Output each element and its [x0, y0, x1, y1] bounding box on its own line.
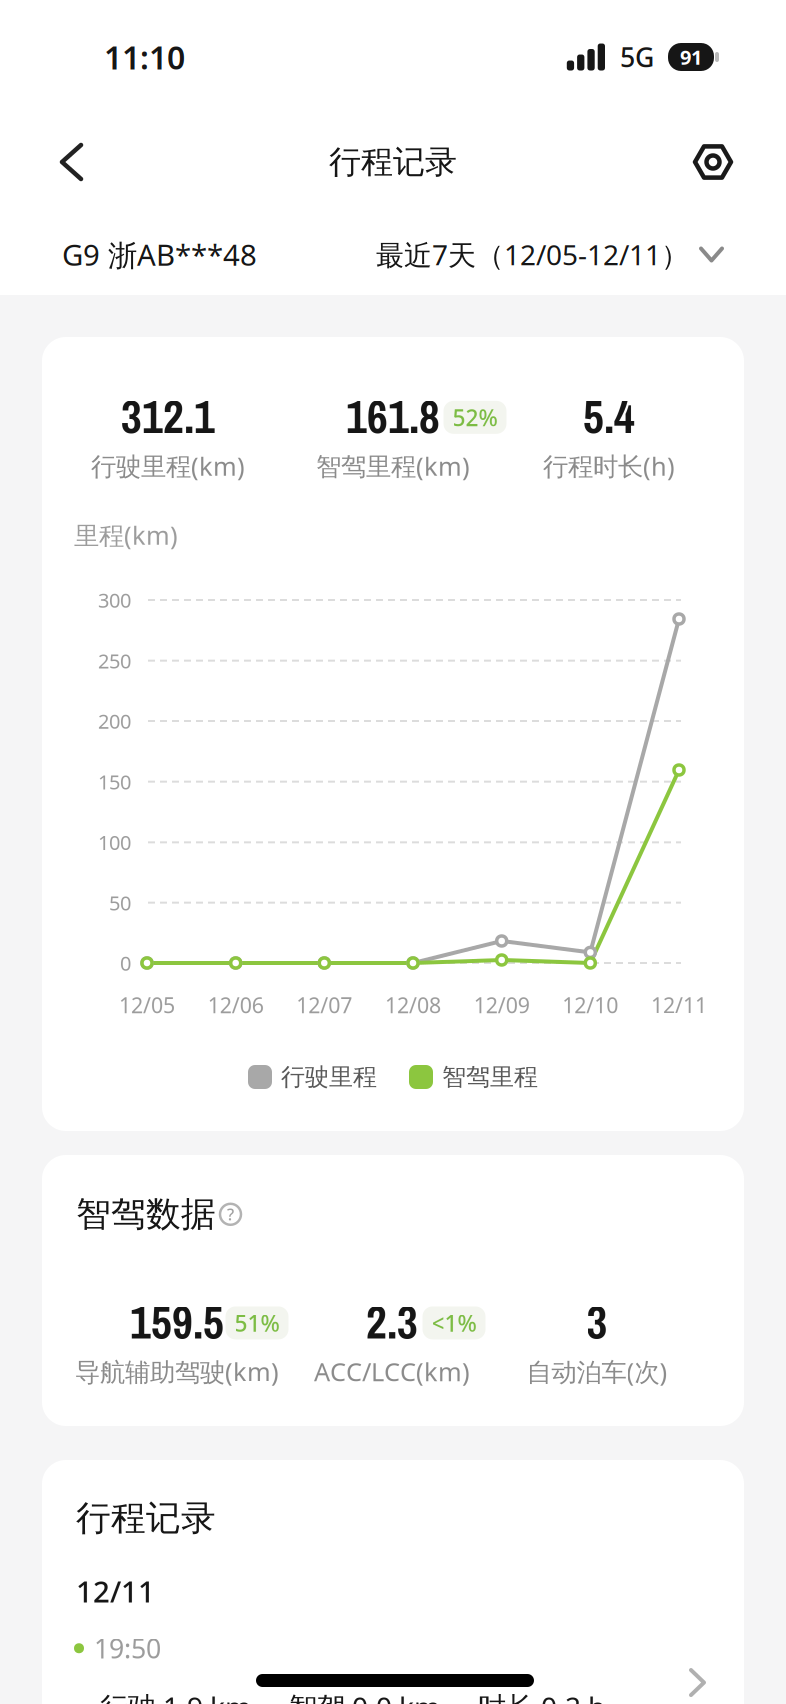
- staticText: 12/07: [296, 991, 352, 1019]
- staticText: 12/05: [119, 991, 175, 1019]
- staticText: 智驾 0.0 km: [289, 1688, 440, 1704]
- staticText: 12/08: [385, 991, 441, 1019]
- staticText: <1%: [431, 1308, 476, 1338]
- staticText: 150: [98, 768, 131, 795]
- staticText: 91: [680, 44, 702, 70]
- staticText: 52%: [452, 402, 497, 432]
- staticText: 自动泊车(次): [526, 1355, 667, 1388]
- staticText: 50: [109, 889, 131, 916]
- staticText: ACC/LCC(km): [314, 1355, 470, 1388]
- staticText: 行程记录: [329, 142, 457, 182]
- staticText: 19:50: [94, 1630, 161, 1666]
- staticText: 智驾数据: [76, 1193, 216, 1236]
- staticText: 12/06: [208, 991, 264, 1019]
- button[interactable]: Back: [0, 125, 81, 199]
- staticText: 行驶里程: [281, 1062, 377, 1092]
- staticText: 2.3: [366, 1292, 418, 1353]
- staticText: 最近7天（12/05-12/11）: [376, 236, 689, 273]
- button[interactable]: 行驶 1.9 km: [42, 1666, 744, 1704]
- button[interactable]: 最近7天（12/05-12/11）: [376, 236, 722, 273]
- staticText: 11:10: [104, 36, 185, 78]
- button[interactable]: Settings: [695, 130, 786, 194]
- button[interactable]: 智驾数据说明: [220, 1204, 241, 1225]
- staticText: 3: [586, 1292, 607, 1353]
- staticText: 312.1: [121, 386, 215, 447]
- staticText: 250: [98, 647, 131, 674]
- staticText: 行驶 1.9 km: [100, 1688, 251, 1704]
- staticText: 159.5: [130, 1292, 224, 1353]
- staticText: G9 浙AB***48: [62, 235, 257, 274]
- staticText: 智驾里程: [442, 1062, 538, 1092]
- staticText: 导航辅助驾驶(km): [75, 1355, 279, 1388]
- staticText: ?: [227, 1204, 234, 1225]
- staticText: 5G: [620, 39, 654, 75]
- staticText: 行驶里程(km): [91, 449, 245, 483]
- staticText: 行程记录: [76, 1497, 216, 1540]
- staticText: 里程(km): [74, 518, 178, 552]
- staticText: 200: [98, 708, 131, 734]
- staticText: 0: [120, 950, 131, 976]
- staticText: 5.4: [583, 386, 635, 447]
- staticText: 12/11: [76, 1572, 155, 1611]
- staticText: 12/11: [651, 991, 707, 1019]
- staticText: 12/10: [562, 991, 618, 1019]
- staticText: 时长 0.2 h: [478, 1688, 605, 1704]
- staticText: 12/09: [474, 991, 530, 1019]
- staticText: 51%: [234, 1308, 279, 1338]
- staticText: 智驾里程(km): [316, 449, 470, 483]
- staticText: 行程时长(h): [543, 449, 675, 483]
- staticText: 161.8: [346, 386, 440, 447]
- staticText: 300: [98, 587, 131, 613]
- staticText: 100: [98, 829, 131, 856]
